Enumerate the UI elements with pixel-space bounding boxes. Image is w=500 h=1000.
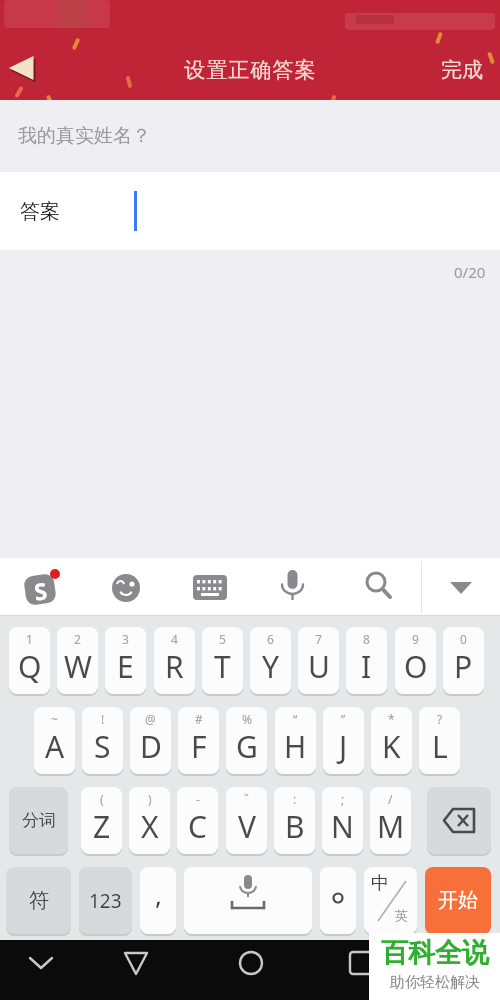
button[interactable]: 7: [298, 627, 339, 694]
button[interactable]: [0, 940, 125, 1000]
staticText: !: [101, 711, 105, 727]
button[interactable]: [278, 568, 308, 608]
button[interactable]: *: [371, 707, 412, 774]
staticText: T: [214, 646, 231, 687]
button[interactable]: 我的真实姓名？: [0, 100, 500, 172]
button[interactable]: [427, 787, 491, 854]
staticText: C: [188, 806, 207, 847]
button[interactable]: :: [274, 787, 315, 854]
button[interactable]: 符: [6, 867, 71, 934]
button[interactable]: -: [177, 787, 218, 854]
staticText: Y: [262, 646, 279, 687]
button[interactable]: [363, 570, 395, 604]
button[interactable]: ”: [323, 707, 364, 774]
staticText: 助你轻松解决: [390, 973, 480, 992]
staticText: E: [117, 646, 134, 687]
staticText: H: [284, 726, 307, 767]
staticText: 中: [371, 872, 389, 895]
button[interactable]: [108, 571, 144, 605]
button[interactable]: 0: [443, 627, 484, 694]
staticText: D: [140, 726, 162, 767]
staticText: 123: [89, 888, 122, 914]
staticText: P: [454, 646, 473, 687]
button[interactable]: ,: [140, 867, 176, 934]
button[interactable]: [250, 940, 375, 1000]
staticText: (: [100, 791, 104, 807]
button[interactable]: ;: [322, 787, 363, 854]
staticText: O: [404, 646, 428, 687]
button[interactable]: ?: [419, 707, 460, 774]
staticText: G: [236, 726, 258, 767]
staticText: I: [361, 646, 372, 687]
staticText: U: [308, 646, 330, 687]
button[interactable]: 分词: [9, 787, 68, 854]
button[interactable]: 123: [79, 867, 132, 934]
staticText: Q: [18, 646, 42, 687]
staticText: X: [141, 806, 159, 847]
button[interactable]: 6: [250, 627, 291, 694]
staticText: 我的真实姓名？: [18, 124, 151, 148]
staticText: 0: [460, 631, 467, 647]
staticText: 9: [412, 631, 419, 647]
button[interactable]: 8: [346, 627, 387, 694]
staticText: V: [238, 806, 256, 847]
staticText: ;: [341, 791, 345, 807]
staticText: N: [331, 806, 354, 847]
button[interactable]: S: [24, 572, 58, 606]
staticText: ˇ: [244, 791, 250, 807]
button[interactable]: #: [178, 707, 219, 774]
button[interactable]: [184, 867, 312, 934]
button[interactable]: [6, 52, 42, 88]
staticText: ”: [341, 711, 346, 727]
staticText: :: [293, 791, 297, 807]
staticText: S: [94, 726, 111, 767]
staticText: 8: [363, 631, 370, 647]
staticText: 2: [74, 631, 81, 647]
staticText: 4: [171, 631, 178, 647]
staticText: 0/20: [454, 262, 486, 282]
staticText: 6: [267, 631, 274, 647]
button[interactable]: ˇ: [226, 787, 267, 854]
button[interactable]: 中: [364, 867, 417, 934]
button[interactable]: 9: [395, 627, 436, 694]
staticText: @: [145, 711, 156, 727]
button[interactable]: !: [82, 707, 123, 774]
button[interactable]: ): [129, 787, 170, 854]
staticText: R: [165, 646, 184, 687]
button[interactable]: 2: [57, 627, 98, 694]
button[interactable]: 答案: [0, 172, 500, 250]
button[interactable]: ~: [34, 707, 75, 774]
button[interactable]: [375, 940, 500, 1000]
staticText: A: [45, 726, 65, 767]
button[interactable]: 4: [154, 627, 195, 694]
button[interactable]: %: [226, 707, 267, 774]
button[interactable]: (: [81, 787, 122, 854]
staticText: ,: [155, 877, 162, 912]
staticText: 英: [395, 907, 408, 923]
button[interactable]: “: [275, 707, 316, 774]
button[interactable]: 1: [9, 627, 50, 694]
staticText: 答案: [20, 199, 60, 224]
staticText: ?: [437, 711, 443, 727]
staticText: J: [339, 726, 348, 767]
button[interactable]: [125, 940, 250, 1000]
staticText: *: [388, 711, 395, 727]
button[interactable]: 3: [105, 627, 146, 694]
button[interactable]: [446, 575, 478, 599]
button[interactable]: 5: [202, 627, 243, 694]
button[interactable]: 完成: [430, 48, 494, 92]
button[interactable]: [193, 575, 227, 601]
button[interactable]: /: [370, 787, 411, 854]
staticText: 1: [26, 631, 33, 647]
staticText: “: [293, 711, 298, 727]
button[interactable]: @: [130, 707, 171, 774]
button[interactable]: 开始: [425, 867, 491, 934]
button[interactable]: [320, 867, 356, 934]
staticText: K: [382, 726, 401, 767]
staticText: 分词: [22, 810, 56, 831]
staticText: F: [191, 726, 207, 767]
staticText: 3: [122, 631, 129, 647]
staticText: W: [64, 646, 92, 687]
staticText: ~: [51, 711, 58, 727]
staticText: 7: [315, 631, 322, 647]
